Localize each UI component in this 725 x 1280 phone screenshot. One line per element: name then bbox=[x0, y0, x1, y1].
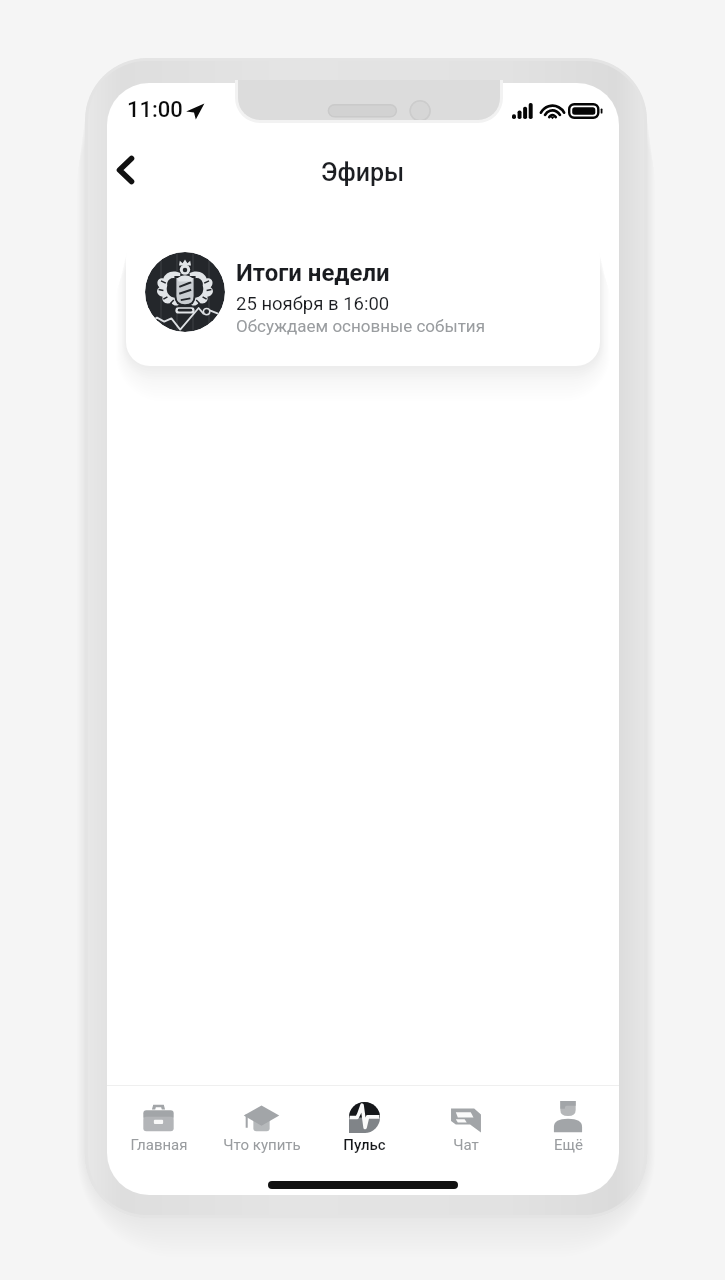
button[interactable]: Главная bbox=[107, 1086, 210, 1164]
button[interactable]: Пульс bbox=[313, 1086, 415, 1164]
staticText: Главная bbox=[130, 1136, 188, 1154]
button[interactable]: Назад bbox=[107, 145, 143, 195]
staticText: 11:00 bbox=[127, 97, 183, 123]
staticText: Ещё bbox=[554, 1136, 583, 1154]
staticText: Эфиры bbox=[321, 158, 405, 187]
staticText: 25 ноября в 16:00 bbox=[236, 293, 390, 315]
staticText: Чат bbox=[453, 1136, 479, 1154]
button[interactable]: Что купить bbox=[210, 1086, 313, 1164]
staticText: Итоги недели bbox=[236, 259, 390, 287]
button[interactable]: Чат bbox=[415, 1086, 517, 1164]
staticText: Пульс bbox=[343, 1136, 386, 1154]
button[interactable]: Ещё bbox=[517, 1086, 619, 1164]
staticText: Обсуждаем основные события bbox=[236, 316, 485, 336]
staticText: Что купить bbox=[223, 1136, 301, 1154]
button[interactable]: Итоги недели bbox=[126, 234, 600, 366]
